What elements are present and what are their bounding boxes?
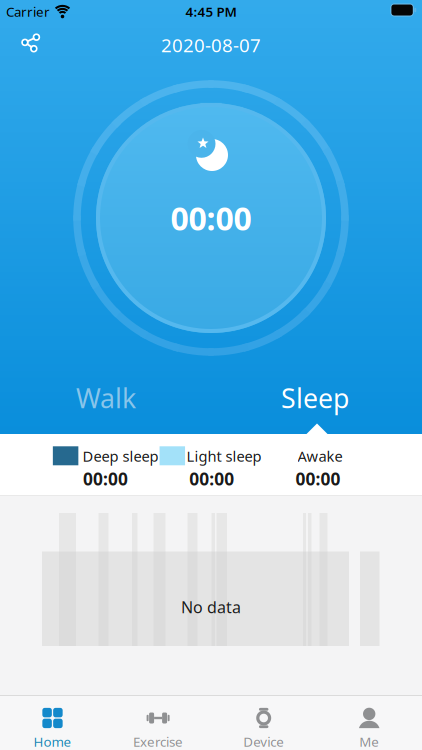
staticText: Walk <box>76 380 136 416</box>
staticText: Home <box>33 733 71 750</box>
staticText: Sleep <box>281 380 349 416</box>
staticText: Awake <box>297 446 342 466</box>
staticText: 00:00 <box>189 467 234 490</box>
button[interactable]: Home <box>2 695 102 750</box>
staticText: Carrier <box>6 3 50 20</box>
staticText: 00:00 <box>295 467 340 490</box>
button[interactable]: Sleep <box>255 376 375 420</box>
staticText: Deep sleep <box>82 446 158 466</box>
button[interactable]: Device <box>214 695 314 750</box>
staticText: Device <box>243 733 284 750</box>
button[interactable]: Me <box>319 695 419 750</box>
staticText: Light sleep <box>186 446 261 466</box>
staticText: 4:45 PM <box>185 3 236 20</box>
staticText: 00:00 <box>83 467 128 490</box>
staticText: Exercise <box>133 733 183 750</box>
staticText: Me <box>359 733 379 750</box>
staticText: No data <box>181 596 241 618</box>
button[interactable]: Share <box>14 26 48 60</box>
button[interactable]: Exercise <box>108 695 208 750</box>
staticText: 2020-08-07 <box>161 33 261 57</box>
button[interactable]: Walk <box>46 376 166 420</box>
staticText: 00:00 <box>170 197 251 239</box>
